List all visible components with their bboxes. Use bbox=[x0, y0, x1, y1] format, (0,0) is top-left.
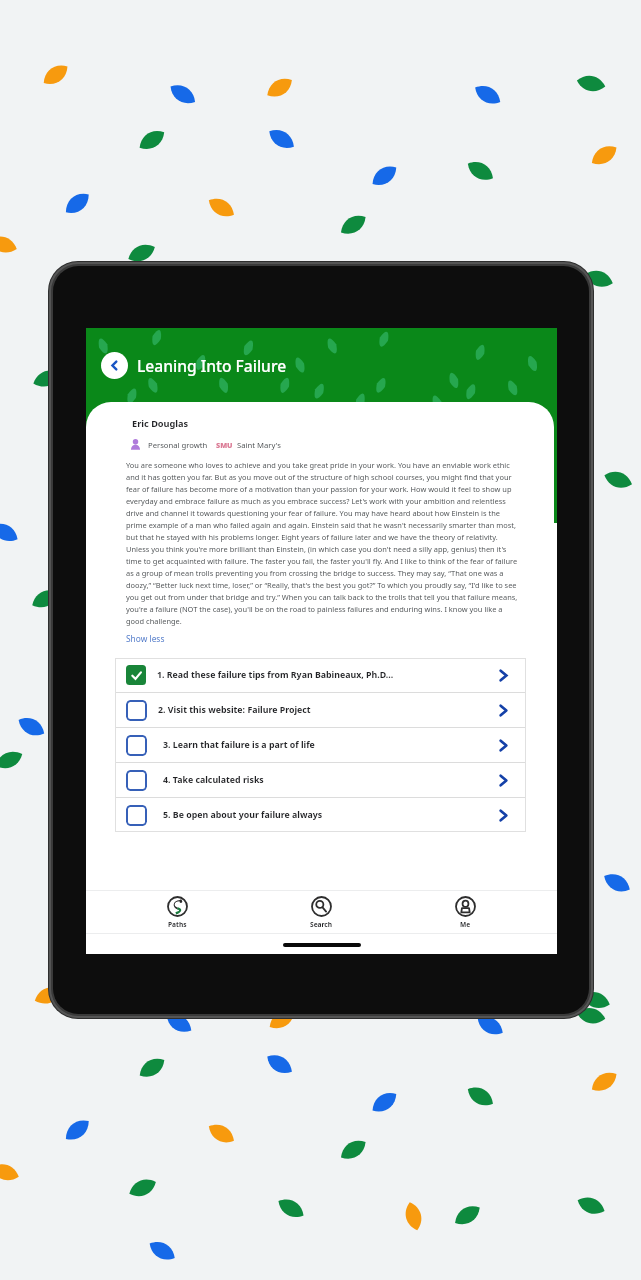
button[interactable]: 2. Visit this website: Failure Project bbox=[115, 693, 526, 727]
staticText: 4. Take calculated risks bbox=[163, 774, 497, 786]
button[interactable]: Search bbox=[249, 891, 393, 933]
staticText: 2. Visit this website: Failure Project bbox=[158, 704, 497, 716]
button[interactable]: Show less bbox=[126, 633, 165, 644]
staticText: Eric Douglas bbox=[132, 417, 189, 430]
staticText: Paths bbox=[168, 920, 187, 929]
staticText: 1. Read these failure tips from Ryan Bab… bbox=[157, 669, 497, 681]
staticText: You are someone who loves to achieve and… bbox=[126, 460, 519, 627]
staticText: Search bbox=[310, 920, 333, 929]
button[interactable]: Me bbox=[393, 891, 537, 933]
staticText: Me bbox=[460, 920, 471, 929]
button[interactable]: Paths bbox=[106, 891, 249, 933]
staticText: Personal growth bbox=[148, 440, 208, 450]
staticText: 5. Be open about your failure always bbox=[163, 809, 497, 821]
button[interactable]: 1. Read these failure tips from Ryan Bab… bbox=[115, 658, 526, 692]
button[interactable]: 5. Be open about your failure always bbox=[115, 798, 526, 832]
button[interactable]: Back bbox=[101, 352, 128, 379]
button[interactable]: 3. Learn that failure is a part of life bbox=[115, 728, 526, 762]
staticText: Saint Mary's bbox=[237, 440, 281, 450]
staticText: SMU bbox=[216, 440, 233, 450]
staticText: 3. Learn that failure is a part of life bbox=[163, 739, 497, 751]
staticText: Show less bbox=[126, 633, 165, 644]
staticText: Leaning Into Failure bbox=[137, 355, 287, 376]
button[interactable]: 4. Take calculated risks bbox=[115, 763, 526, 797]
